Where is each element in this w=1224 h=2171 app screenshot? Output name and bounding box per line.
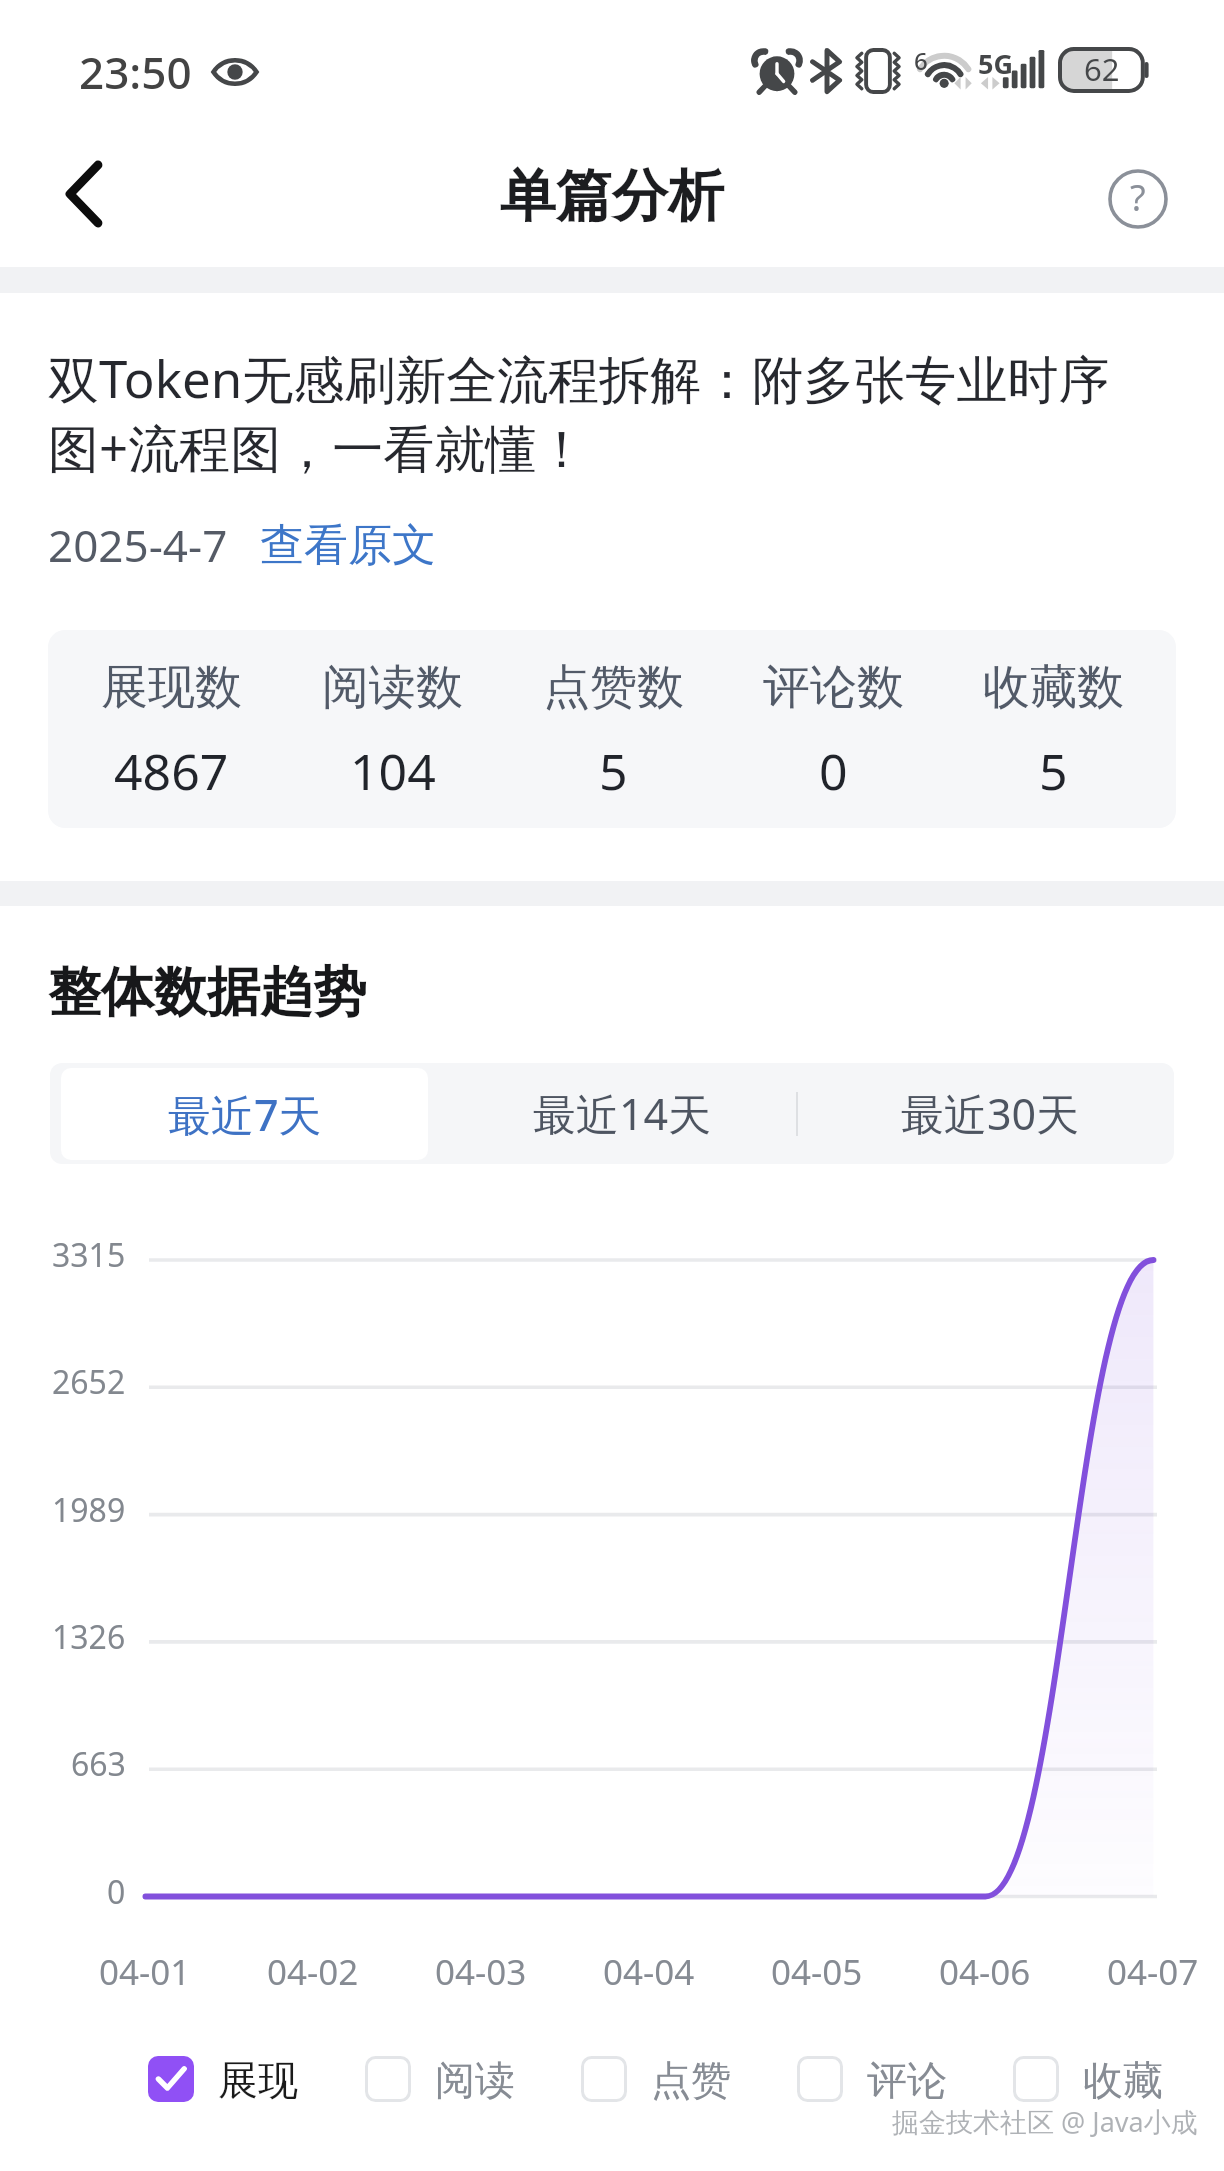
staticText: 04-07: [1107, 1948, 1199, 1996]
staticText: 104: [350, 737, 436, 805]
button[interactable]: 最近7天: [61, 1068, 428, 1160]
staticText: 23:50: [79, 42, 192, 102]
staticText: 04-04: [603, 1948, 695, 1996]
staticText: 1989: [52, 1488, 126, 1532]
staticText: 查看原文: [260, 518, 436, 573]
staticText: 评论: [867, 2055, 947, 2103]
staticText: 1326: [52, 1615, 126, 1659]
staticText: 4867: [114, 737, 229, 805]
staticText: 5G: [978, 45, 1013, 82]
staticText: ?: [1130, 173, 1146, 222]
button[interactable]: 收藏: [1013, 2055, 1163, 2103]
button[interactable]: Back: [26, 156, 136, 266]
staticText: 04-05: [771, 1948, 863, 1996]
button[interactable]: 最近14天: [439, 1063, 806, 1164]
staticText: 最近30天: [901, 1084, 1080, 1143]
staticText: 双Token无感刷新全流程拆解：附多张专业时序图+流程图，一看就懂！: [48, 343, 1150, 482]
staticText: 5: [1039, 737, 1068, 805]
staticText: 6: [914, 44, 928, 77]
staticText: 04-06: [939, 1948, 1031, 1996]
staticText: 阅读数: [322, 658, 463, 717]
button[interactable]: 最近30天: [807, 1063, 1174, 1164]
staticText: 04-01: [99, 1948, 191, 1996]
staticText: 收藏: [1083, 2055, 1163, 2103]
staticText: 5: [599, 737, 628, 805]
staticText: 展现: [218, 2055, 298, 2103]
staticText: 0: [819, 737, 848, 805]
button[interactable]: 查看原文: [260, 518, 436, 573]
button[interactable]: 阅读: [365, 2055, 515, 2103]
staticText: 单篇分析: [500, 161, 724, 232]
staticText: 2652: [52, 1360, 126, 1404]
staticText: 04-02: [267, 1948, 359, 1996]
staticText: 阅读: [435, 2055, 515, 2103]
staticText: 最近14天: [533, 1084, 712, 1143]
staticText: 663: [71, 1742, 126, 1786]
staticText: 2025-4-7: [48, 515, 228, 575]
button[interactable]: 评论: [797, 2055, 947, 2103]
button[interactable]: 点赞: [581, 2055, 731, 2103]
staticText: 点赞: [651, 2055, 731, 2103]
staticText: 点赞数: [543, 658, 684, 717]
button[interactable]: 展现: [148, 2055, 298, 2103]
staticText: 62: [1084, 48, 1120, 90]
button[interactable]: Help: [1090, 151, 1186, 247]
staticText: 评论数: [763, 658, 904, 717]
staticText: 最近7天: [168, 1085, 322, 1144]
staticText: 掘金技术社区 @ Java小成: [892, 2103, 1198, 2140]
staticText: 0: [107, 1870, 126, 1914]
staticText: 整体数据趋势: [48, 959, 366, 1026]
staticText: 04-03: [435, 1948, 527, 1996]
staticText: 收藏数: [983, 658, 1124, 717]
staticText: 展现数: [101, 658, 242, 717]
staticText: 3315: [52, 1233, 126, 1277]
